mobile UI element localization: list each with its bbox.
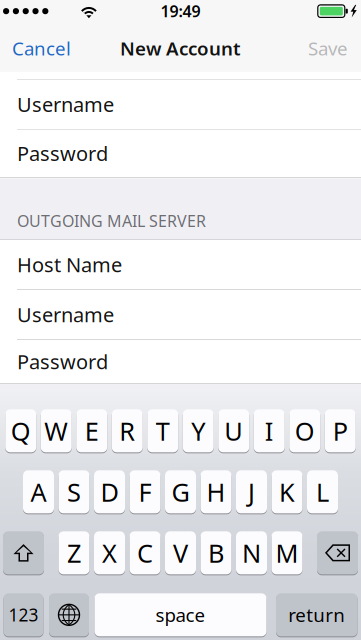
button[interactable]: R bbox=[112, 409, 143, 453]
button[interactable]: E bbox=[76, 409, 107, 453]
button[interactable]: A bbox=[23, 470, 54, 514]
staticText: N bbox=[242, 536, 261, 570]
staticText: Q bbox=[11, 414, 31, 448]
staticText: 19:49 bbox=[160, 0, 200, 22]
staticText: E bbox=[85, 414, 99, 448]
button[interactable]: 123 bbox=[3, 593, 43, 637]
staticText: R bbox=[119, 414, 135, 448]
button[interactable]: C bbox=[129, 531, 160, 575]
button[interactable]: I bbox=[254, 409, 285, 453]
button[interactable]: D bbox=[94, 470, 125, 514]
staticText: S bbox=[67, 475, 81, 509]
staticText: New Account bbox=[120, 36, 241, 61]
button[interactable]: Password bbox=[0, 340, 361, 383]
staticText: J bbox=[248, 475, 255, 509]
staticText: OUTGOING MAIL SERVER bbox=[17, 210, 206, 231]
staticText: D bbox=[100, 475, 118, 509]
staticText: Username bbox=[17, 91, 114, 118]
staticText: C bbox=[137, 536, 153, 570]
staticText: A bbox=[30, 475, 46, 509]
button[interactable]: K bbox=[271, 470, 302, 514]
button[interactable]: J bbox=[236, 470, 267, 514]
button[interactable]: S bbox=[58, 470, 89, 514]
button[interactable]: Host Name bbox=[0, 240, 361, 289]
button[interactable]: T bbox=[147, 409, 178, 453]
button[interactable]: G bbox=[165, 470, 196, 514]
staticText: W bbox=[44, 414, 68, 448]
staticText: space bbox=[155, 602, 205, 627]
button[interactable]: return bbox=[276, 593, 357, 637]
staticText: F bbox=[138, 475, 151, 509]
staticText: L bbox=[316, 475, 329, 509]
button[interactable]: X bbox=[94, 531, 125, 575]
button[interactable]: M bbox=[271, 531, 302, 575]
button[interactable]: V bbox=[165, 531, 196, 575]
button[interactable]: N bbox=[236, 531, 267, 575]
button[interactable]: Cancel bbox=[0, 23, 83, 73]
staticText: H bbox=[206, 475, 225, 509]
staticText: Username bbox=[17, 301, 114, 328]
staticText: O bbox=[295, 414, 315, 448]
staticText: T bbox=[156, 414, 170, 448]
button[interactable]: space bbox=[94, 593, 266, 637]
staticText: P bbox=[333, 414, 348, 448]
button[interactable]: P bbox=[325, 409, 356, 453]
staticText: Y bbox=[191, 414, 205, 448]
staticText: I bbox=[265, 414, 274, 448]
staticText: Password bbox=[17, 348, 108, 375]
button[interactable]: Delete bbox=[317, 531, 358, 575]
button[interactable]: Next keyboard bbox=[49, 593, 89, 637]
button[interactable]: Z bbox=[58, 531, 89, 575]
button[interactable]: Password bbox=[0, 130, 361, 177]
staticText: M bbox=[275, 536, 298, 570]
button[interactable]: Q bbox=[5, 409, 36, 453]
staticText: Z bbox=[67, 536, 81, 570]
button[interactable]: B bbox=[200, 531, 231, 575]
staticText: U bbox=[224, 414, 243, 448]
staticText: Save bbox=[308, 36, 348, 61]
staticText: 123 bbox=[8, 603, 38, 626]
button[interactable]: Username bbox=[0, 80, 361, 129]
button[interactable]: Y bbox=[183, 409, 214, 453]
staticText: Host Name bbox=[17, 251, 122, 278]
staticText: X bbox=[102, 536, 117, 570]
button[interactable]: Username bbox=[0, 290, 361, 339]
button[interactable]: W bbox=[41, 409, 72, 453]
staticText: Cancel bbox=[12, 36, 71, 61]
staticText: G bbox=[171, 475, 189, 509]
button[interactable]: Save bbox=[296, 23, 361, 73]
button[interactable]: L bbox=[307, 470, 338, 514]
staticText: V bbox=[173, 536, 188, 570]
button[interactable]: F bbox=[129, 470, 160, 514]
button[interactable]: Shift bbox=[3, 531, 44, 575]
staticText: Password bbox=[17, 140, 108, 167]
staticText: B bbox=[208, 536, 224, 570]
button[interactable]: O bbox=[289, 409, 320, 453]
staticText: return bbox=[288, 602, 345, 627]
button[interactable]: H bbox=[200, 470, 231, 514]
button[interactable]: U bbox=[218, 409, 249, 453]
staticText: K bbox=[279, 475, 295, 509]
